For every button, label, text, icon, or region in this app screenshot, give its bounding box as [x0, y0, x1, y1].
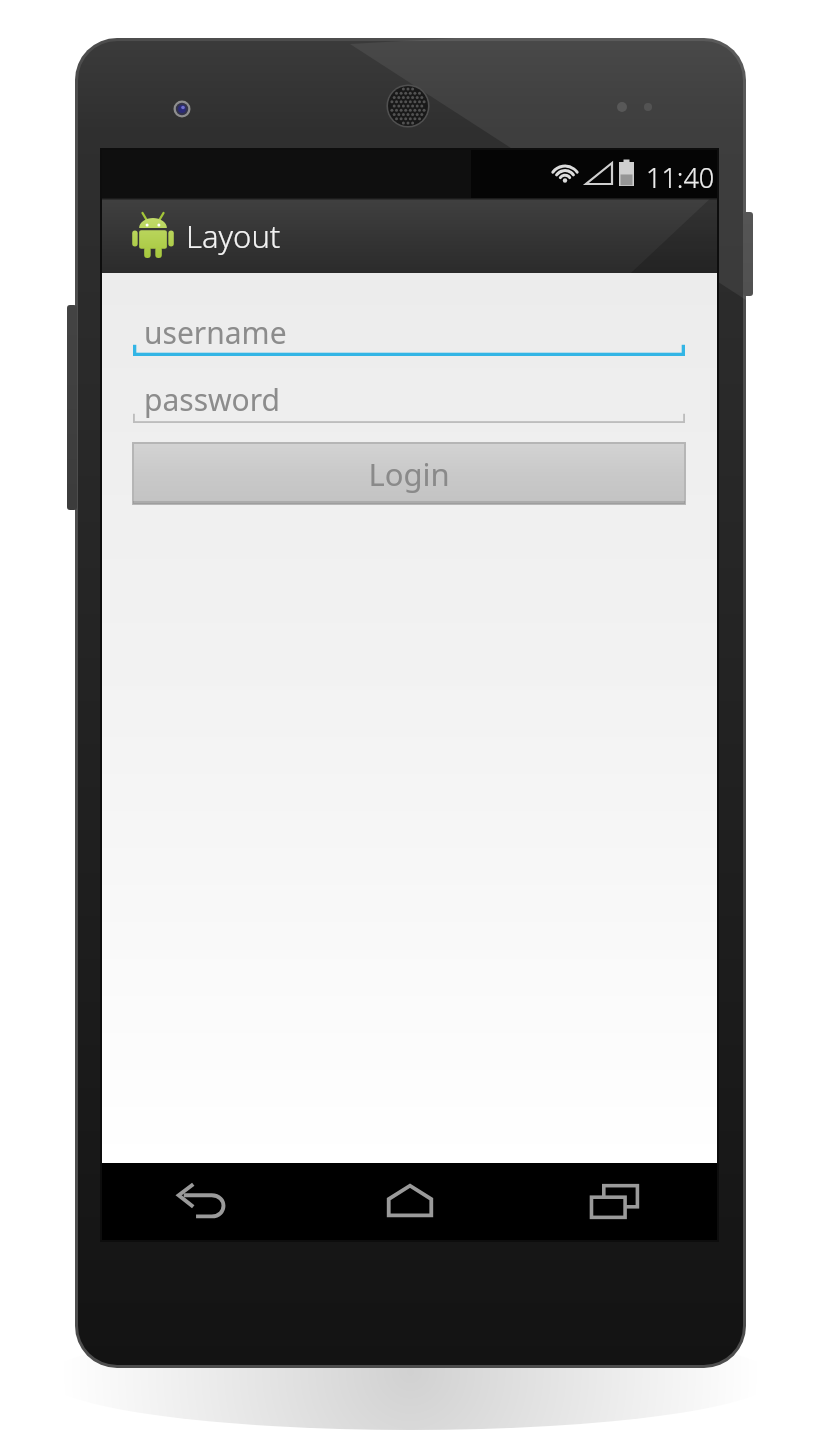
staticText: Layout: [186, 215, 281, 257]
button[interactable]: password: [133, 379, 685, 423]
staticText: username: [144, 312, 287, 353]
button[interactable]: Login: [133, 443, 685, 504]
button[interactable]: Recent apps: [512, 1163, 717, 1240]
staticText: Login: [368, 453, 450, 495]
staticText: 11:40: [646, 159, 715, 196]
staticText: password: [144, 379, 280, 420]
button[interactable]: Back: [102, 1163, 307, 1240]
button[interactable]: username: [133, 312, 685, 356]
button[interactable]: Layout: [102, 198, 717, 273]
button[interactable]: Home: [307, 1163, 512, 1240]
